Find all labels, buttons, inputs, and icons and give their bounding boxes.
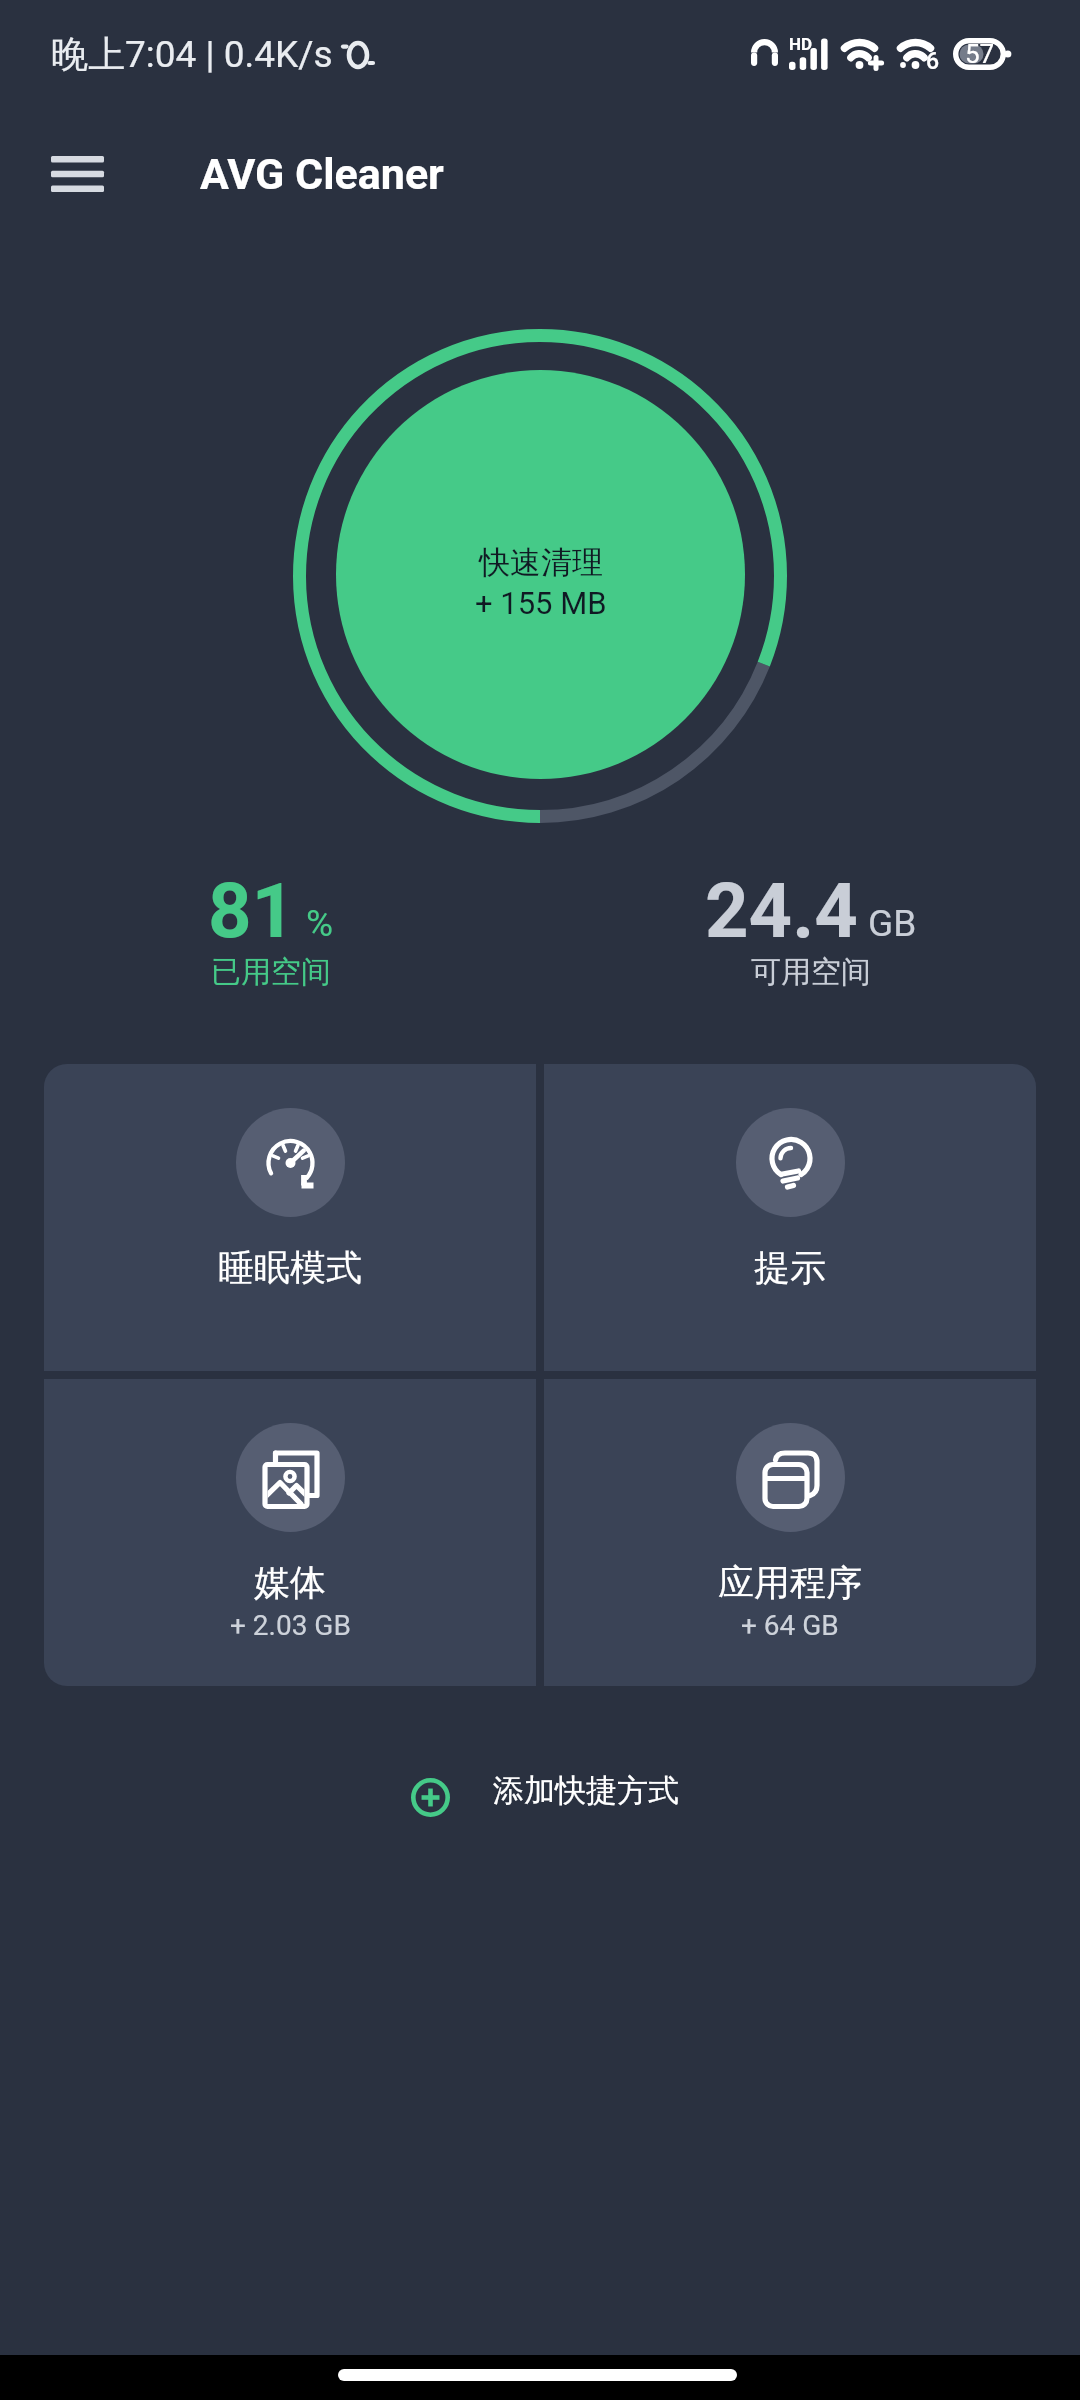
staticText: + 155 MB bbox=[475, 585, 607, 621]
staticText: + 64 GB bbox=[741, 1609, 839, 1642]
button[interactable]: 快速清理 bbox=[336, 370, 745, 779]
staticText: 添加快捷方式 bbox=[493, 1771, 679, 1810]
staticText: 应用程序 bbox=[718, 1560, 862, 1605]
staticText: GB bbox=[868, 902, 917, 945]
staticText: 已用空间 bbox=[211, 953, 331, 991]
button[interactable]: 提示 bbox=[544, 1064, 1036, 1371]
staticText: HD bbox=[789, 34, 813, 54]
staticText: + 2.03 GB bbox=[230, 1609, 351, 1642]
button[interactable]: 媒体 bbox=[44, 1379, 536, 1686]
button[interactable]: Menu bbox=[29, 126, 125, 222]
staticText: 提示 bbox=[754, 1245, 826, 1290]
button[interactable]: 添加快捷方式 bbox=[401, 1759, 693, 1822]
staticText: 媒体 bbox=[254, 1560, 326, 1605]
staticText: 快速清理 bbox=[479, 543, 603, 582]
staticText: 可用空间 bbox=[751, 953, 871, 991]
button[interactable]: 应用程序 bbox=[544, 1379, 1036, 1686]
staticText: AVG Cleaner bbox=[200, 149, 444, 199]
button[interactable]: 睡眠模式 bbox=[44, 1064, 536, 1371]
staticText: 81 bbox=[208, 866, 296, 955]
staticText: 6 bbox=[926, 48, 940, 75]
staticText: 57 bbox=[965, 39, 995, 69]
staticText: 24.4 bbox=[705, 866, 858, 955]
staticText: 睡眠模式 bbox=[218, 1245, 362, 1290]
staticText: % bbox=[306, 902, 334, 945]
staticText: 晚上7:04 | 0.4K/s bbox=[51, 31, 333, 78]
